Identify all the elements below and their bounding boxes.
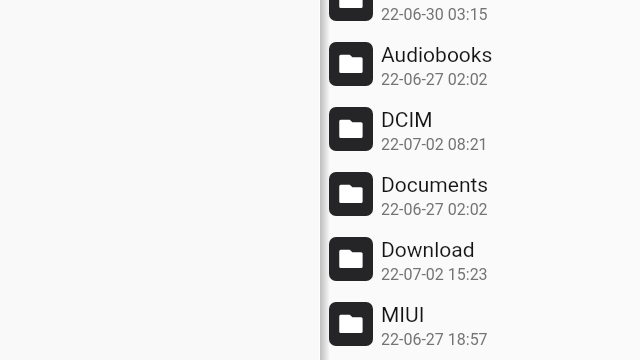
button[interactable]: Folder xyxy=(320,291,640,356)
staticText: 22-07-02 15:23 xyxy=(381,265,488,284)
other: Folder xyxy=(329,172,373,216)
button[interactable]: Folder xyxy=(320,0,640,31)
button[interactable]: Folder xyxy=(320,356,640,360)
staticText: Documents xyxy=(381,173,489,198)
staticText: MIUI xyxy=(381,303,425,328)
button[interactable]: Folder xyxy=(320,226,640,291)
staticText: 22-06-27 18:57 xyxy=(381,330,488,349)
other: Folder xyxy=(329,302,373,346)
staticText: 22-07-02 08:21 xyxy=(381,135,488,154)
staticText: 22-06-27 02:02 xyxy=(381,70,488,89)
button[interactable]: Folder xyxy=(320,161,640,226)
staticText: Audiobooks xyxy=(381,43,493,68)
other: Folder xyxy=(329,237,373,281)
other: Folder xyxy=(329,0,373,21)
staticText: DCIM xyxy=(381,108,433,133)
staticText: 22-06-30 03:15 xyxy=(381,5,488,24)
button[interactable]: Folder xyxy=(320,96,640,161)
staticText: Download xyxy=(381,238,475,263)
other: Folder xyxy=(329,42,373,86)
button[interactable]: Folder xyxy=(320,31,640,96)
other: Folder xyxy=(329,107,373,151)
staticText: 22-06-27 02:02 xyxy=(381,200,488,219)
